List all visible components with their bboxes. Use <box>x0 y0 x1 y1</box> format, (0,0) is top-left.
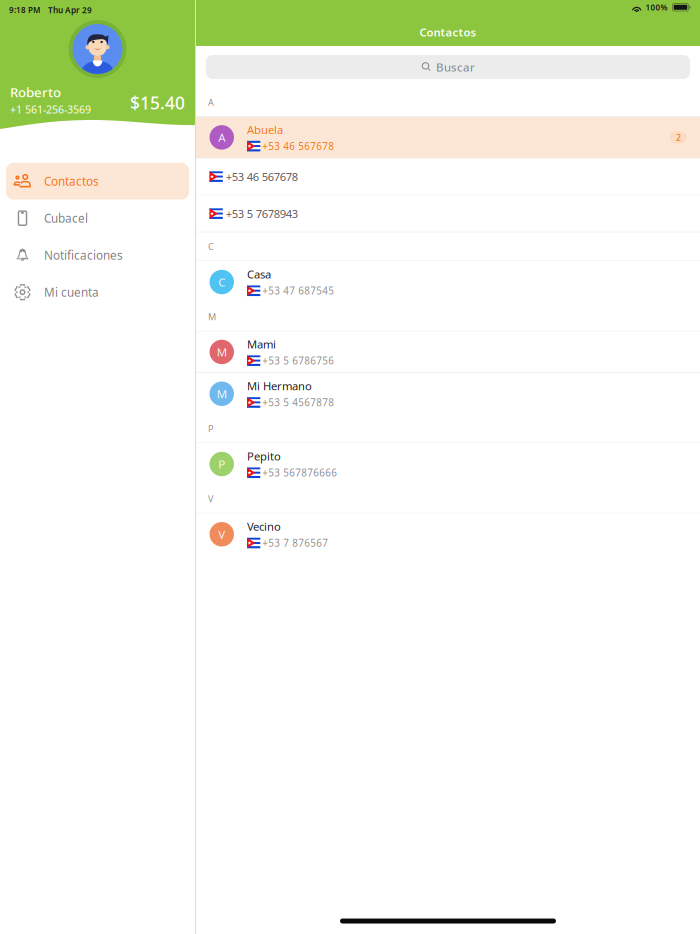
staticText: P <box>218 456 225 472</box>
button[interactable]: V <box>196 513 700 555</box>
staticText: M <box>217 344 227 360</box>
staticText: Vecino <box>247 519 281 534</box>
staticText: Pepito <box>247 449 281 464</box>
button[interactable]: +53 46 567678 <box>196 158 700 195</box>
button[interactable]: A <box>196 117 700 158</box>
button[interactable]: Contactos <box>0 163 195 200</box>
staticText: V <box>208 493 213 505</box>
staticText: P <box>208 422 213 435</box>
staticText: +53 46 567678 <box>226 169 298 184</box>
staticText: $15.40 <box>130 91 185 115</box>
staticText: M <box>217 386 227 402</box>
staticText: Contactos <box>44 173 99 189</box>
staticText: +53 7 876567 <box>262 536 328 550</box>
staticText: 9:18 PM <box>9 5 40 15</box>
staticText: Roberto <box>10 83 61 101</box>
staticText: Mami <box>247 336 276 352</box>
staticText: Casa <box>247 267 271 282</box>
staticText: Notificaciones <box>44 247 123 263</box>
staticText: 100% <box>645 2 667 13</box>
staticText: +53 5 4567878 <box>262 396 334 409</box>
staticText: Cubacel <box>44 210 88 226</box>
staticText: +53 567876666 <box>262 466 337 479</box>
button[interactable]: Mi cuenta <box>0 274 195 311</box>
staticText: V <box>218 526 225 542</box>
button[interactable]: Notificaciones <box>0 237 195 274</box>
staticText: A <box>208 96 214 108</box>
button[interactable]: P <box>196 443 700 485</box>
staticText: Mi Hermano <box>247 378 312 394</box>
staticText: +1 561-256-3569 <box>10 102 91 117</box>
staticText: +53 47 687545 <box>262 284 334 297</box>
staticText: Abuela <box>247 122 283 137</box>
staticText: +53 46 567678 <box>262 139 334 153</box>
staticText: M <box>208 311 216 323</box>
staticText: C <box>218 274 225 290</box>
staticText: Contactos <box>419 24 476 40</box>
button[interactable]: C <box>196 261 700 303</box>
staticText: 2 <box>676 131 681 143</box>
staticText: C <box>208 240 214 253</box>
button[interactable]: +53 5 7678943 <box>196 195 700 232</box>
staticText: Mi cuenta <box>44 284 99 300</box>
button[interactable]: M <box>196 373 700 414</box>
button[interactable]: Cubacel <box>0 200 195 237</box>
staticText: +53 5 7678943 <box>226 206 298 221</box>
staticText: +53 5 6786756 <box>262 354 334 367</box>
staticText: A <box>218 130 225 145</box>
staticText: Buscar <box>436 59 475 75</box>
button[interactable]: M <box>196 331 700 373</box>
staticText: Thu Apr 29 <box>48 4 92 16</box>
